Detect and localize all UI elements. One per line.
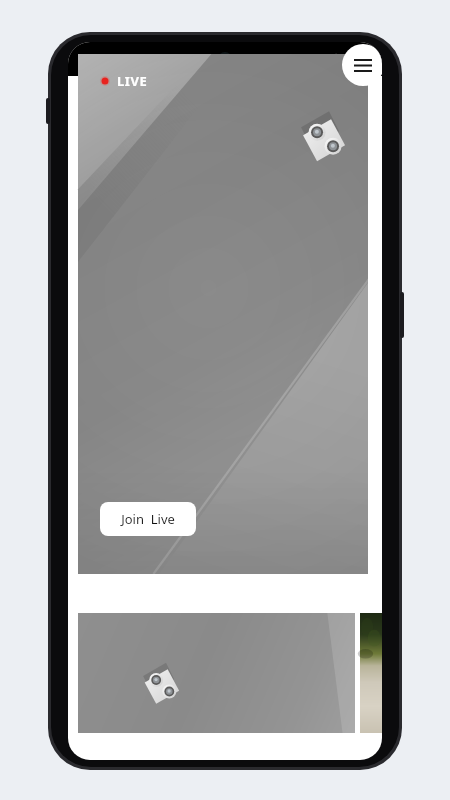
- button[interactable]: [360, 613, 382, 733]
- button[interactable]: LIVE: [78, 54, 368, 574]
- staticText: Join Live: [121, 510, 175, 528]
- button[interactable]: Join Live: [100, 502, 196, 536]
- button[interactable]: Menu: [342, 44, 382, 86]
- staticText: LIVE: [117, 72, 148, 90]
- staticText: 10:00: [80, 51, 111, 67]
- button[interactable]: LIVE: [100, 72, 148, 90]
- button[interactable]: [78, 613, 355, 733]
